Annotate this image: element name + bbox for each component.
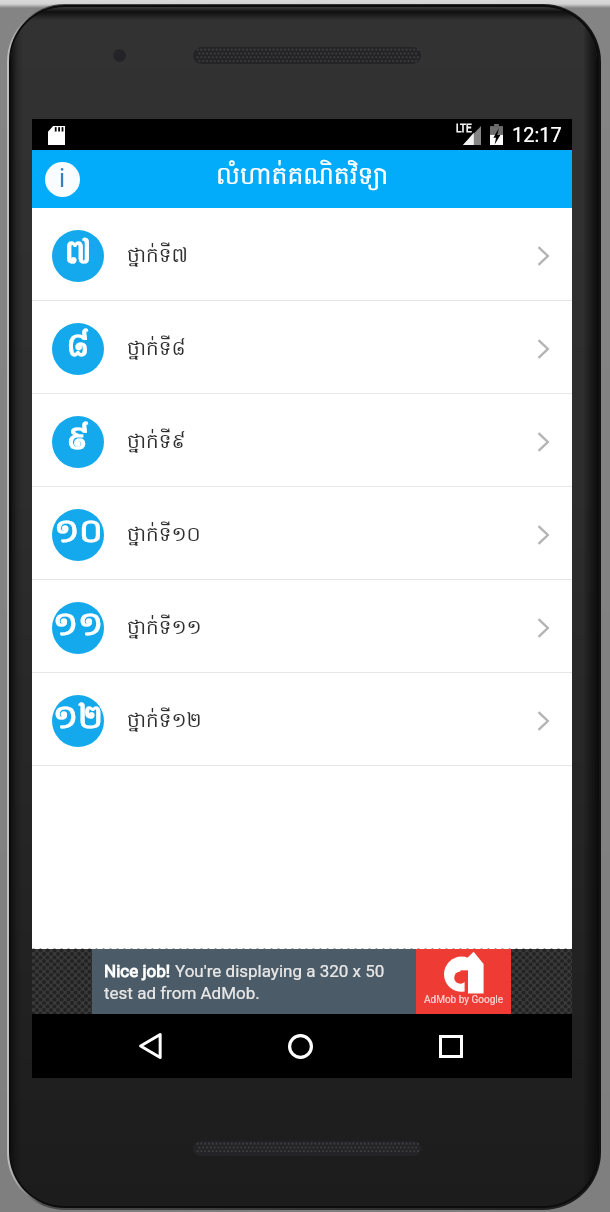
staticText: ថ្នាក់ទី៧ <box>127 242 188 271</box>
button[interactable]: Home <box>260 1014 340 1078</box>
staticText: You're displaying a 320 x 50 <box>175 961 385 981</box>
button[interactable]: ១១ <box>32 580 572 672</box>
staticText: លំហាត់គណិតវិទ្យា <box>216 160 389 197</box>
button[interactable]: ៩ <box>32 394 572 486</box>
staticText: ១១ <box>53 603 103 651</box>
staticText: i <box>59 164 66 193</box>
staticText: ថ្នាក់ទី៨ <box>127 335 186 364</box>
staticText: ៩ <box>66 417 90 465</box>
button[interactable]: ៨ <box>32 301 572 393</box>
staticText: ៧ <box>64 231 92 279</box>
staticText: ថ្នាក់ទី៩ <box>127 428 186 457</box>
staticText: ៨ <box>66 324 90 372</box>
button[interactable]: AdMob by Google <box>416 949 511 1014</box>
staticText: ថ្នាក់ទី១០ <box>127 521 201 550</box>
staticText: ១២ <box>53 696 103 744</box>
button[interactable]: ១២ <box>32 673 572 765</box>
staticText: AdMob by Google <box>424 994 504 1006</box>
button[interactable]: Back <box>110 1014 190 1078</box>
staticText: test ad from AdMob. <box>104 983 260 1003</box>
button[interactable]: Recents <box>411 1014 491 1078</box>
button[interactable]: ១០ <box>32 487 572 579</box>
button[interactable]: Nice job! <box>92 949 416 1014</box>
staticText: LTE <box>456 123 472 135</box>
button[interactable]: ៧ <box>32 208 572 300</box>
staticText: Nice job! <box>104 961 175 981</box>
staticText: 12:17 <box>512 123 562 146</box>
staticText: ថ្នាក់ទី១១ <box>127 614 202 643</box>
button[interactable]: Info <box>32 150 92 208</box>
staticText: ថ្នាក់ទី១២ <box>127 707 202 736</box>
staticText: ១០ <box>54 510 103 558</box>
